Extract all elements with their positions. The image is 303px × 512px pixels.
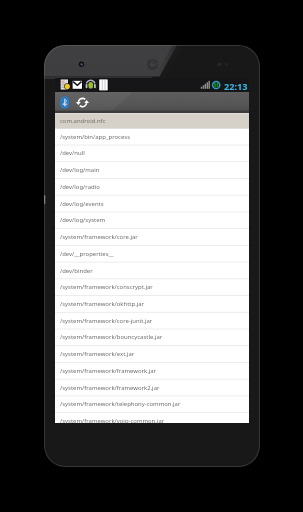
button[interactable]: /system/bin/app_process bbox=[55, 129, 249, 145]
staticText: /system/framework/conscrypt.jar bbox=[60, 283, 153, 291]
staticText: 22:13 bbox=[224, 80, 248, 93]
button[interactable]: /dev/log/events bbox=[55, 196, 249, 212]
staticText: /system/framework/framework2.jar bbox=[60, 384, 160, 392]
staticText: /dev/log/radio bbox=[60, 183, 100, 191]
staticText: /dev/__properties__ bbox=[60, 250, 114, 258]
button[interactable]: /dev/binder bbox=[55, 263, 249, 279]
button[interactable]: /dev/log/radio bbox=[55, 179, 249, 195]
staticText: /dev/null bbox=[60, 149, 85, 157]
button[interactable]: /system/framework/okhttp.jar bbox=[55, 296, 249, 312]
button[interactable]: /dev/log/main bbox=[55, 162, 249, 178]
button[interactable]: /system/framework/ext.jar bbox=[55, 346, 249, 362]
staticText: /system/framework/okhttp.jar bbox=[60, 300, 145, 308]
button[interactable]: Sync bbox=[76, 96, 89, 109]
button[interactable]: com.android.nfc bbox=[55, 113, 249, 128]
button[interactable]: /system/framework/framework2.jar bbox=[55, 380, 249, 396]
staticText: /system/framework/core-junit.jar bbox=[60, 317, 153, 325]
staticText: /system/framework/telephony-common.jar bbox=[60, 400, 181, 408]
button[interactable]: /system/framework/core-junit.jar bbox=[55, 313, 249, 329]
button[interactable]: /system/framework/framework.jar bbox=[55, 363, 249, 379]
staticText: /system/bin/app_process bbox=[60, 133, 130, 141]
staticText: /system/framework/core.jar bbox=[60, 233, 138, 241]
button[interactable]: /system/framework/conscrypt.jar bbox=[55, 279, 249, 295]
button[interactable]: /system/framework/bouncycastle.jar bbox=[55, 329, 249, 345]
staticText: /dev/log/system bbox=[60, 216, 106, 224]
staticText: /system/framework/bouncycastle.jar bbox=[60, 333, 163, 341]
staticText: /system/framework/framework.jar bbox=[60, 367, 157, 375]
staticText: /dev/log/main bbox=[60, 166, 100, 174]
button[interactable]: /system/framework/core.jar bbox=[55, 229, 249, 245]
staticText: /dev/log/events bbox=[60, 200, 104, 208]
button[interactable]: /dev/log/system bbox=[55, 212, 249, 228]
staticText: /system/framework/voip-common.jar bbox=[60, 417, 165, 425]
button[interactable]: Bluetooth bbox=[59, 95, 71, 110]
button[interactable]: /dev/__properties__ bbox=[55, 246, 249, 262]
staticText: com.android.nfc bbox=[60, 117, 106, 125]
button[interactable]: /system/framework/voip-common.jar bbox=[55, 413, 249, 429]
button[interactable]: /system/framework/telephony-common.jar bbox=[55, 396, 249, 412]
staticText: /dev/binder bbox=[60, 267, 93, 275]
staticText: /system/framework/ext.jar bbox=[60, 350, 135, 358]
button[interactable]: /dev/null bbox=[55, 145, 249, 161]
